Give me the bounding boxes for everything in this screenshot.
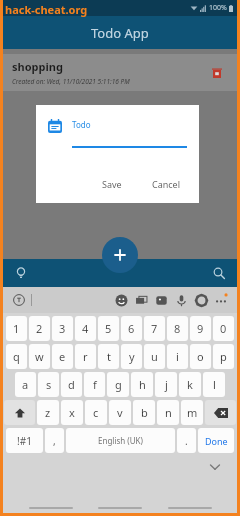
button[interactable]: 6 <box>121 316 142 341</box>
staticText: 4 <box>82 321 89 336</box>
button[interactable]: a <box>15 372 36 397</box>
button[interactable]: r <box>75 344 96 369</box>
staticText: a <box>22 377 29 392</box>
button[interactable]: w <box>29 344 50 369</box>
button[interactable]: Tips <box>11 263 31 283</box>
button[interactable]: y <box>121 344 142 369</box>
button[interactable]: 9 <box>190 316 211 341</box>
button[interactable]: g <box>107 372 129 397</box>
button[interactable]: Backspace <box>205 400 236 425</box>
button[interactable]: settings <box>191 290 211 310</box>
staticText: j <box>165 377 168 392</box>
staticText: y <box>129 349 135 364</box>
button[interactable]: emoji <box>111 290 131 310</box>
button[interactable]: 1 <box>6 316 27 341</box>
button[interactable]: !#1 <box>6 428 43 453</box>
button[interactable]: o <box>190 344 211 369</box>
staticText: 7 <box>151 321 158 336</box>
staticText: c <box>93 405 99 420</box>
button[interactable]: Done <box>198 428 234 453</box>
button[interactable]: i <box>167 344 188 369</box>
button[interactable]: x <box>61 400 83 425</box>
staticText: hack-cheat.org <box>5 2 88 17</box>
button[interactable]: 3 <box>52 316 73 341</box>
button[interactable]: 7 <box>144 316 165 341</box>
staticText: 2 <box>36 321 43 336</box>
staticText: g <box>115 377 122 392</box>
button[interactable]: 2 <box>29 316 50 341</box>
staticText: q <box>13 349 20 364</box>
button[interactable]: mic <box>171 290 191 310</box>
button[interactable]: More <box>211 290 231 310</box>
staticText: 6 <box>128 321 135 336</box>
button[interactable]: Delete <box>209 65 225 81</box>
staticText: shopping <box>12 59 63 74</box>
button[interactable]: Todo App <box>3 16 237 49</box>
staticText: m <box>187 405 198 420</box>
staticText: . <box>185 434 188 448</box>
button[interactable]: Hide keyboard <box>207 459 223 475</box>
staticText: o <box>197 349 204 364</box>
staticText: 3 <box>59 321 66 336</box>
button[interactable]: sticker <box>151 290 171 310</box>
button[interactable]: v <box>109 400 131 425</box>
staticText: , <box>53 434 56 448</box>
button[interactable]: l <box>203 372 225 397</box>
staticText: z <box>45 405 51 420</box>
button[interactable]: clipboard <box>131 290 151 310</box>
staticText: l <box>213 377 216 392</box>
button[interactable]: h <box>131 372 153 397</box>
button[interactable]: 5 <box>98 316 119 341</box>
staticText: f <box>93 377 97 392</box>
button[interactable]: Cancel <box>144 175 189 193</box>
button[interactable]: 4 <box>75 316 96 341</box>
button[interactable]: 0 <box>213 316 234 341</box>
staticText: 0 <box>220 321 227 336</box>
button[interactable]: Add <box>102 237 138 273</box>
button[interactable]: d <box>61 372 82 397</box>
button[interactable]: English (UK) <box>66 428 175 453</box>
button[interactable]: c <box>85 400 107 425</box>
staticText: 100% <box>209 3 227 13</box>
staticText: 9 <box>197 321 204 336</box>
staticText: s <box>46 377 52 392</box>
button[interactable]: Translate <box>10 291 28 309</box>
button[interactable]: Save <box>94 175 130 193</box>
staticText: k <box>187 377 193 392</box>
button[interactable]: Search <box>209 263 229 283</box>
button[interactable]: p <box>213 344 234 369</box>
staticText: Created on: Wed, 11/10/2021 5:11:16 PM <box>12 77 130 86</box>
staticText: Cancel <box>152 178 181 190</box>
button[interactable]: 8 <box>167 316 188 341</box>
staticText: d <box>68 377 75 392</box>
button[interactable]: , <box>45 428 64 453</box>
staticText: n <box>165 405 172 420</box>
button[interactable]: f <box>84 372 105 397</box>
staticText: p <box>220 349 227 364</box>
button[interactable]: j <box>155 372 177 397</box>
button[interactable]: z <box>37 400 59 425</box>
staticText: v <box>117 405 123 420</box>
staticText: b <box>141 405 148 420</box>
button[interactable]: m <box>181 400 203 425</box>
button[interactable]: . <box>177 428 196 453</box>
staticText: Todo App <box>91 24 149 42</box>
staticText: Done <box>205 435 228 447</box>
button[interactable]: k <box>179 372 201 397</box>
staticText: u <box>151 349 158 364</box>
button[interactable]: b <box>133 400 155 425</box>
staticText: h <box>139 377 146 392</box>
button[interactable]: e <box>52 344 73 369</box>
staticText: English (UK) <box>98 435 143 446</box>
staticText: 5 <box>105 321 112 336</box>
staticText: t <box>107 349 111 364</box>
button[interactable]: u <box>144 344 165 369</box>
button[interactable]: q <box>6 344 27 369</box>
staticText: w <box>35 349 44 364</box>
staticText: Save <box>102 178 122 190</box>
button[interactable]: t <box>98 344 119 369</box>
button[interactable]: n <box>157 400 179 425</box>
button[interactable]: Shift <box>4 400 35 425</box>
staticText: 1 <box>13 321 20 336</box>
button[interactable]: s <box>38 372 59 397</box>
